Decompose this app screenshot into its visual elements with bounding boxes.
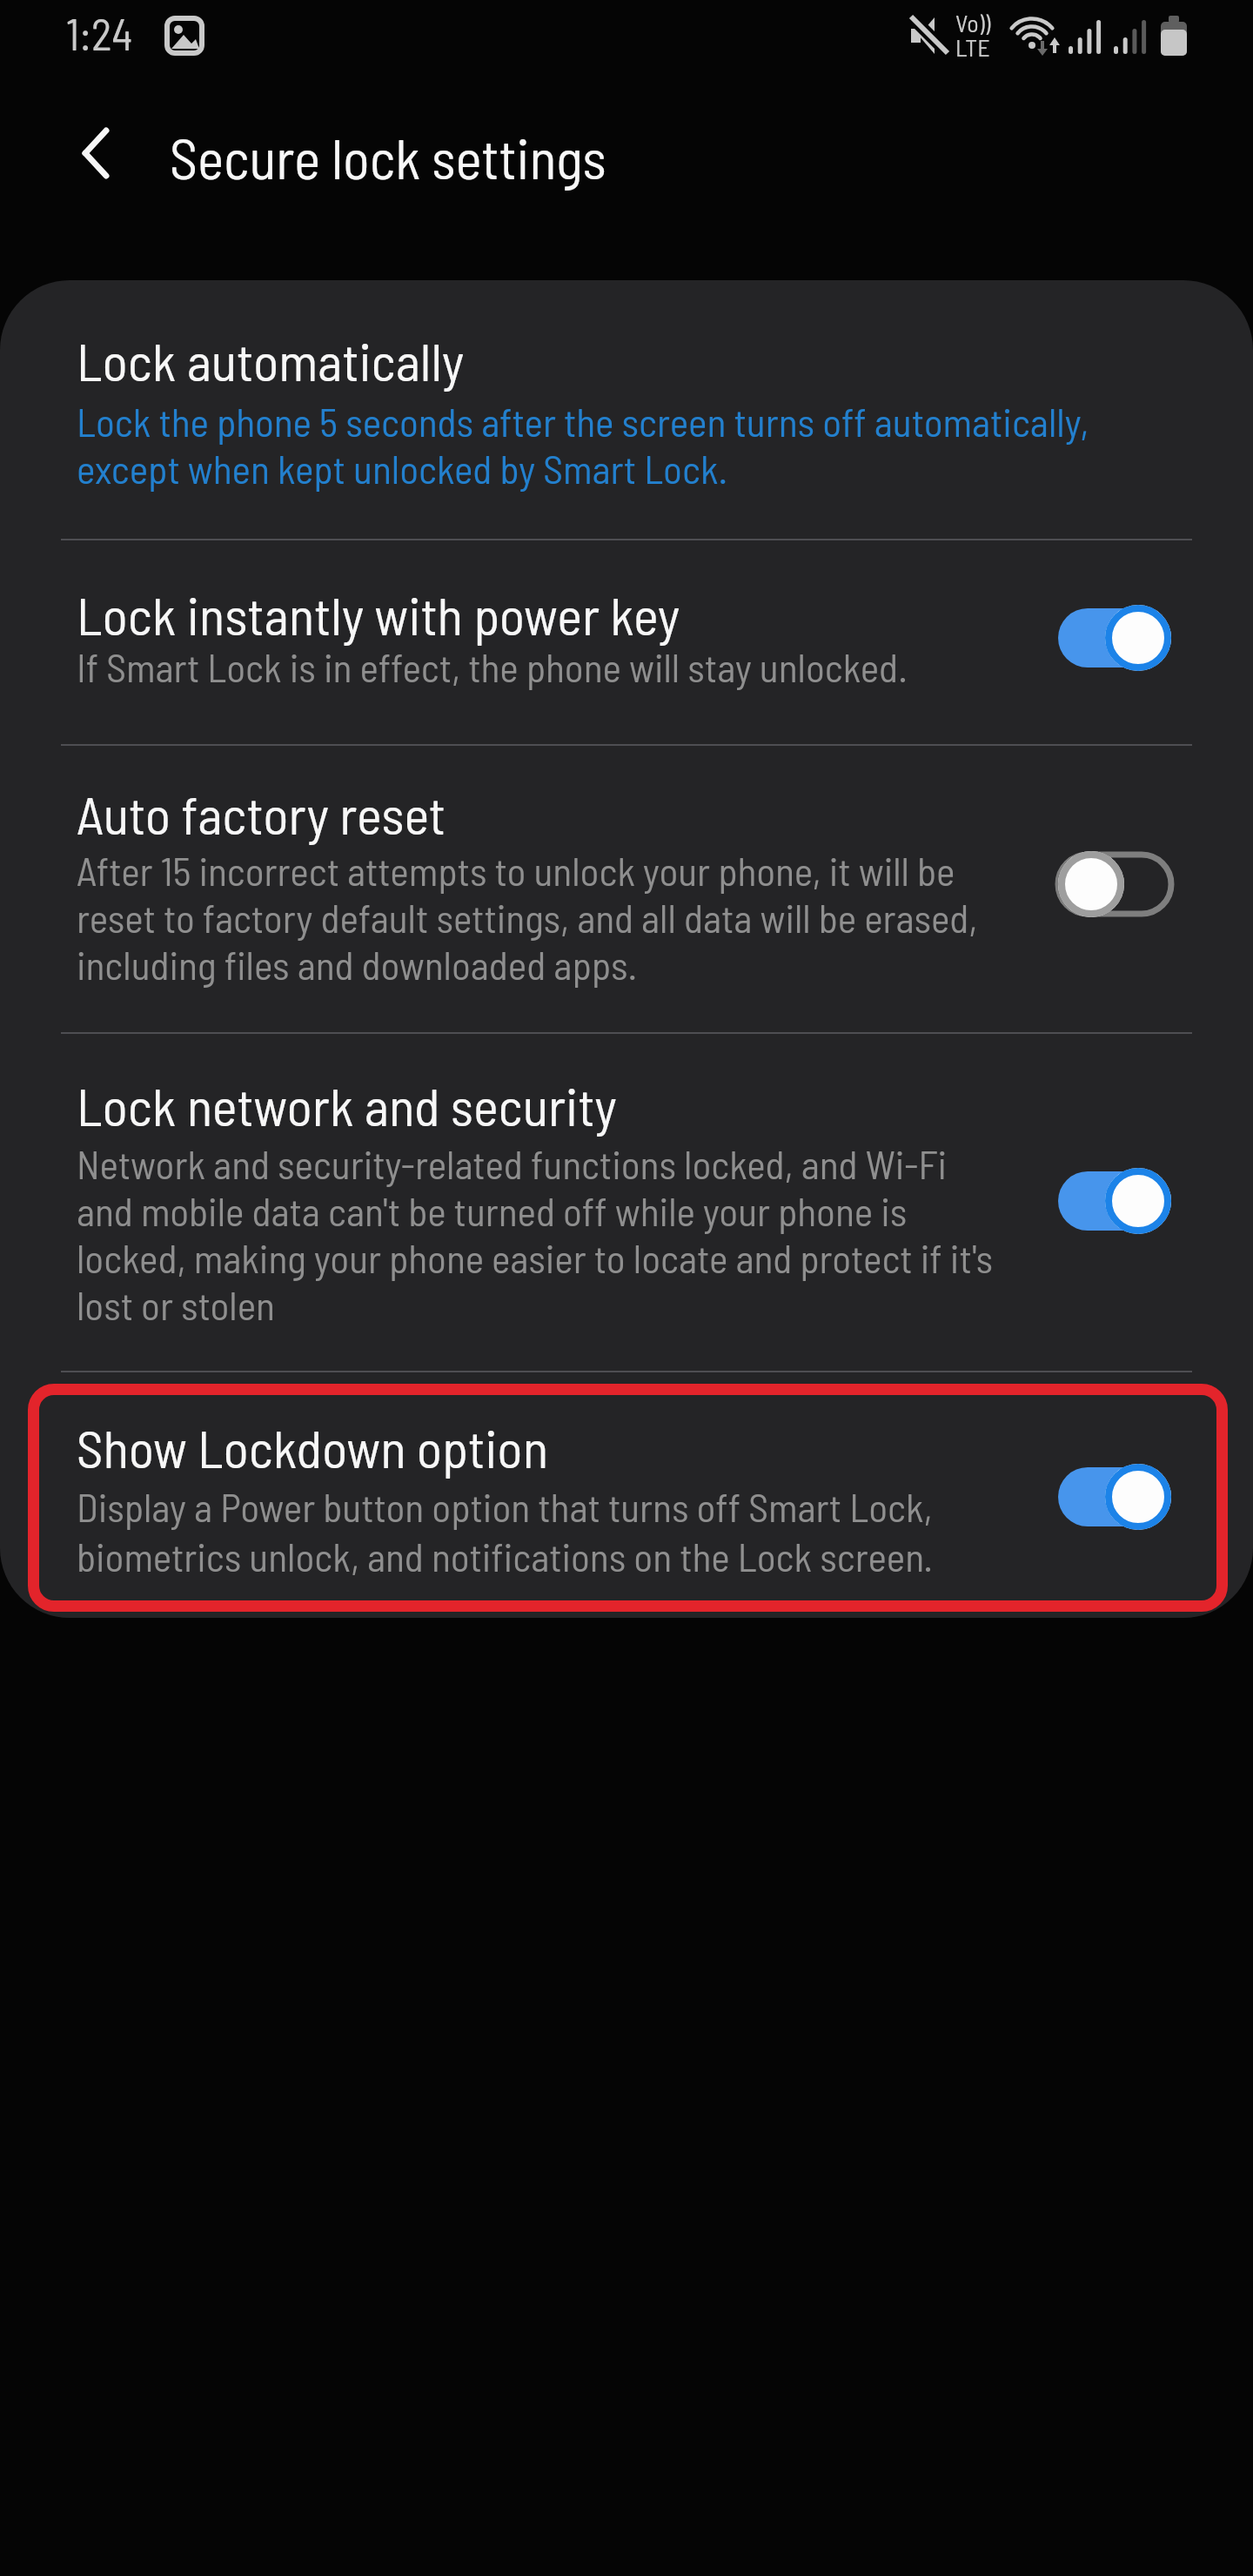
staticText: Lock instantly with power key — [77, 582, 680, 646]
button[interactable] — [1049, 1458, 1180, 1536]
staticText: 1:24 — [66, 7, 133, 59]
staticText: LTE — [955, 32, 990, 62]
button[interactable] — [1049, 599, 1180, 677]
staticText: If Smart Lock is in effect, the phone wi… — [77, 642, 908, 690]
staticText: Show Lockdown option — [77, 1415, 549, 1479]
staticText: Network and security-related functions l… — [77, 1139, 994, 1328]
button[interactable] — [0, 744, 1253, 1032]
staticText: Lock automatically — [77, 328, 465, 392]
staticText: Vo)) — [955, 8, 991, 37]
button[interactable] — [0, 539, 1253, 744]
staticText: Lock network and security — [77, 1073, 617, 1137]
staticText: Lock the phone 5 seconds after the scree… — [77, 397, 1089, 492]
staticText: After 15 incorrect attempts to unlock yo… — [77, 846, 978, 988]
button[interactable] — [1049, 845, 1180, 923]
button[interactable] — [0, 280, 1253, 539]
staticText: Display a Power button option that turns… — [77, 1482, 933, 1580]
button[interactable] — [1049, 1162, 1180, 1240]
staticText: Auto factory reset — [77, 782, 446, 845]
button[interactable] — [0, 1371, 1253, 1618]
button[interactable] — [52, 113, 148, 204]
staticText: Secure lock settings — [170, 124, 606, 191]
button[interactable] — [0, 1032, 1253, 1371]
